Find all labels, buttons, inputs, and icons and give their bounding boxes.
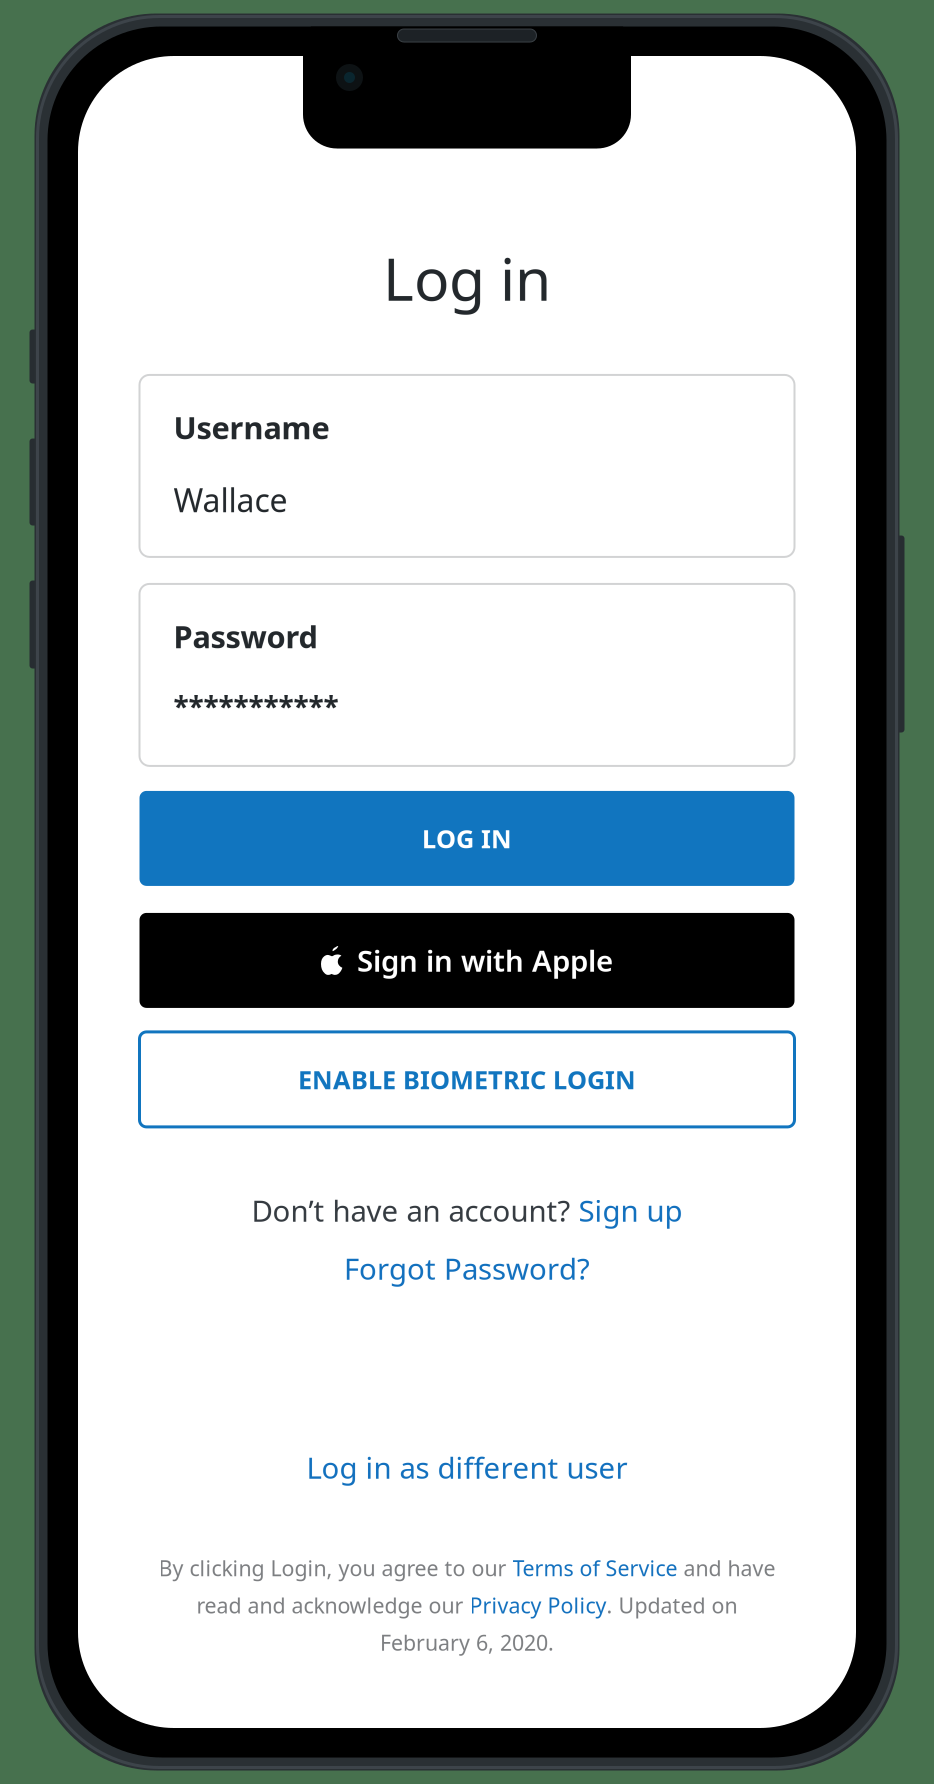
staticText: Privacy Policy bbox=[469, 1591, 606, 1619]
button[interactable]: Sign up bbox=[578, 1191, 682, 1230]
staticText: Terms of Service bbox=[512, 1554, 677, 1582]
staticText: Forgot Password? bbox=[344, 1249, 590, 1288]
button[interactable]: LOG IN bbox=[139, 791, 794, 886]
staticText: *********** bbox=[173, 688, 338, 725]
staticText: Wallace bbox=[173, 479, 287, 521]
staticText: By clicking Login, you agree to our bbox=[158, 1554, 512, 1582]
staticText: February 6, 2020. bbox=[380, 1628, 554, 1657]
button[interactable]: Forgot Password? bbox=[344, 1249, 590, 1288]
button[interactable]: Sign in with Apple bbox=[139, 913, 794, 1008]
staticText: ENABLE BIOMETRIC LOGIN bbox=[298, 1063, 636, 1096]
staticText: Username bbox=[173, 407, 329, 448]
button[interactable]: Username bbox=[139, 375, 794, 557]
button[interactable]: Privacy Policy bbox=[469, 1591, 606, 1619]
staticText: Log in as different user bbox=[306, 1448, 627, 1487]
button[interactable]: ENABLE BIOMETRIC LOGIN bbox=[139, 1032, 794, 1127]
button[interactable]: Password bbox=[139, 584, 794, 766]
staticText: read and acknowledge our bbox=[196, 1591, 469, 1619]
staticText: Log in bbox=[383, 239, 551, 317]
staticText: and have bbox=[677, 1554, 775, 1582]
staticText: Sign up bbox=[578, 1191, 682, 1230]
button[interactable]: Log in as different user bbox=[306, 1448, 627, 1487]
button[interactable]: Terms of Service bbox=[512, 1554, 677, 1582]
staticText: Password bbox=[173, 616, 317, 657]
staticText: . Updated on bbox=[606, 1591, 737, 1619]
staticText: LOG IN bbox=[422, 822, 512, 855]
staticText: Don’t have an account? bbox=[251, 1191, 578, 1230]
staticText: Sign in with Apple bbox=[357, 941, 613, 980]
